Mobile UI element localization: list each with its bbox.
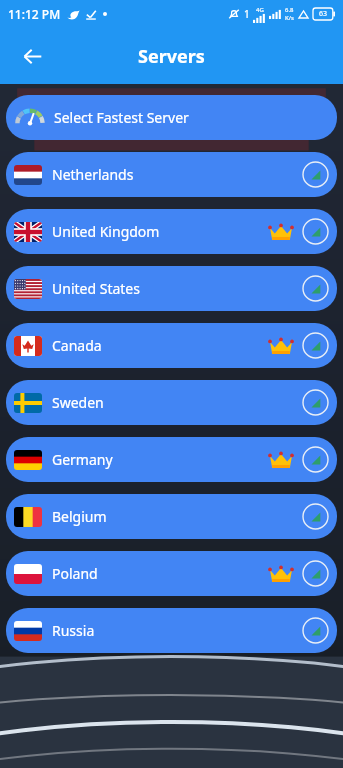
staticText: Russia [52, 621, 95, 640]
button[interactable]: Netherlands [6, 152, 337, 197]
staticText: Select Fastest Server [54, 108, 189, 127]
staticText: Servers [138, 44, 205, 69]
button[interactable]: Back [8, 32, 56, 80]
staticText: Canada [52, 336, 102, 355]
staticText: United Kingdom [52, 222, 160, 241]
staticText: 6.8 [285, 6, 294, 14]
staticText: 1 [244, 7, 250, 21]
staticText: 63 [319, 9, 328, 19]
staticText: 11:12 PM [8, 6, 61, 22]
staticText: K/s [285, 14, 294, 22]
staticText: 4G [256, 6, 264, 14]
staticText: Netherlands [52, 165, 134, 184]
staticText: Germany [52, 450, 113, 469]
button[interactable]: Sweden [6, 380, 337, 425]
staticText: Belgium [52, 507, 107, 526]
staticText: Sweden [52, 393, 104, 412]
button[interactable]: Select Fastest Server [6, 95, 337, 140]
staticText: United States [52, 279, 140, 298]
staticText: Poland [52, 564, 98, 583]
button[interactable]: Poland [6, 551, 337, 596]
button[interactable]: Russia [6, 608, 337, 653]
button[interactable]: United Kingdom [6, 209, 337, 254]
button[interactable]: Belgium [6, 494, 337, 539]
button[interactable]: United States [6, 266, 337, 311]
button[interactable]: Canada [6, 323, 337, 368]
button[interactable]: Germany [6, 437, 337, 482]
